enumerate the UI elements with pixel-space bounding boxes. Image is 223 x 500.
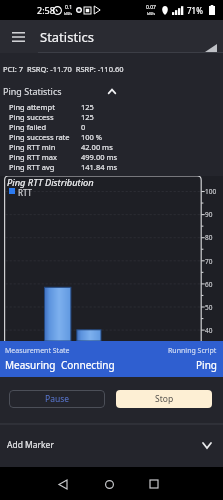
- staticText: kB/s: [64, 11, 73, 16]
- staticText: RTT: [18, 187, 33, 198]
- button[interactable]: Back: [48, 469, 78, 499]
- staticText: 40: [205, 326, 213, 335]
- button[interactable]: Stop: [116, 390, 212, 408]
- staticText: 0.1: [65, 4, 73, 11]
- staticText: Measurement State: [5, 346, 70, 356]
- button[interactable]: Add Marker: [0, 425, 223, 467]
- staticText: 125: [81, 102, 94, 112]
- staticText: Statistics: [40, 28, 94, 46]
- staticText: Ping success rate: [9, 132, 70, 142]
- staticText: Running Script: [168, 346, 217, 356]
- staticText: Stop: [155, 393, 174, 405]
- staticText: 100: [205, 187, 217, 196]
- staticText: Ping RTT Distribution: [7, 176, 94, 189]
- staticText: Ping Statistics: [3, 85, 62, 97]
- staticText: Ping: [196, 358, 217, 372]
- staticText: 60: [205, 280, 213, 289]
- staticText: 70: [205, 257, 213, 266]
- staticText: Ping RTT avg: [9, 162, 55, 172]
- staticText: kB/s: [147, 11, 156, 16]
- staticText: Measuring: [5, 358, 56, 372]
- staticText: Ping failed: [9, 122, 47, 132]
- staticText: Pause: [45, 393, 70, 405]
- staticText: 2:58: [37, 4, 55, 16]
- staticText: Add Marker: [7, 439, 54, 451]
- staticText: 141.84 ms: [81, 162, 118, 172]
- staticText: Connecting: [61, 358, 115, 372]
- staticText: Ping RTT min: [9, 142, 56, 152]
- staticText: 0: [81, 122, 86, 132]
- staticText: 100 %: [81, 132, 103, 142]
- staticText: Ping RTT max: [9, 152, 57, 162]
- staticText: PCI: 7 RSRQ: -11.70 RSRP: -110.60: [3, 64, 124, 74]
- button[interactable]: Navigation menu: [4, 23, 32, 51]
- staticText: 42.00 ms: [81, 142, 113, 152]
- staticText: 80: [205, 233, 213, 242]
- button[interactable]: Pause: [9, 390, 105, 408]
- button[interactable]: Home: [94, 469, 124, 499]
- button[interactable]: Recent apps: [139, 469, 169, 499]
- staticText: 90: [205, 210, 213, 219]
- staticText: 50: [205, 303, 213, 312]
- staticText: Ping success: [9, 112, 54, 122]
- staticText: Ping attempt: [9, 102, 55, 112]
- staticText: 71%: [187, 5, 203, 16]
- staticText: 499.00 ms: [81, 152, 118, 162]
- button[interactable]: Ping Statistics: [0, 81, 223, 101]
- staticText: 125: [81, 112, 94, 122]
- staticText: 0.07: [146, 4, 156, 11]
